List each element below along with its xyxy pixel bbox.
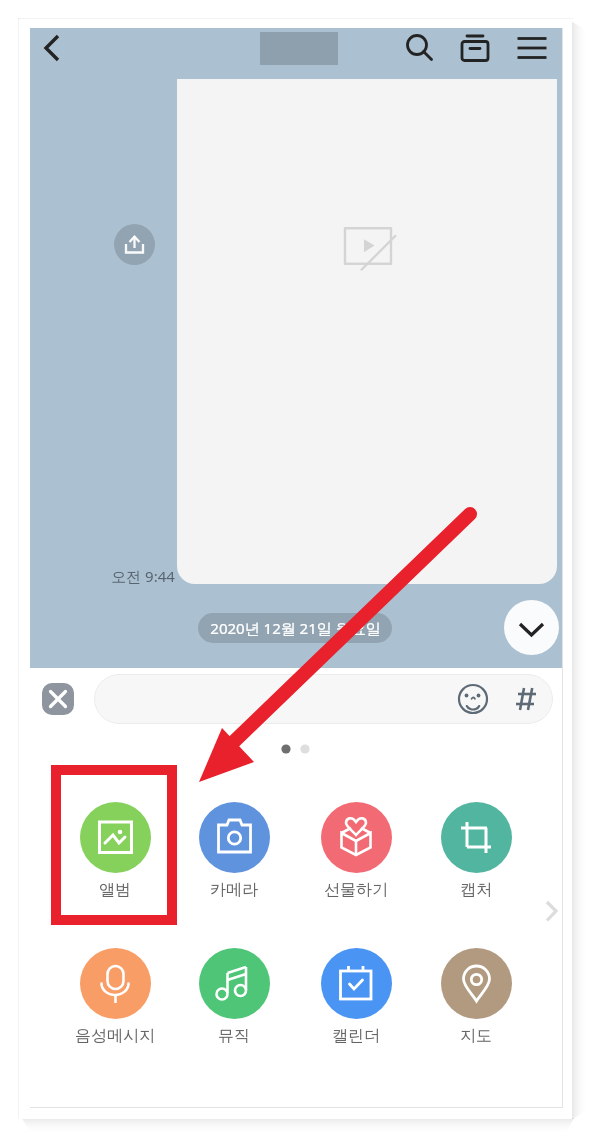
button[interactable]: 음성메시지 bbox=[60, 948, 170, 1058]
staticText: 지도 bbox=[460, 1026, 492, 1046]
button[interactable]: 캡처 bbox=[421, 802, 531, 912]
button[interactable]: Hashtag bbox=[509, 682, 543, 716]
button[interactable] bbox=[94, 674, 553, 724]
button[interactable]: 선물하기 bbox=[301, 802, 411, 912]
button[interactable]: 지도 bbox=[421, 948, 531, 1058]
staticText: 오전 9:44 bbox=[111, 566, 175, 586]
staticText: 카메라 bbox=[210, 880, 258, 900]
button[interactable]: Video message bbox=[177, 79, 557, 584]
button[interactable]: Close attachments bbox=[42, 683, 74, 715]
button[interactable]: 앨범 bbox=[60, 802, 170, 912]
staticText: 캘린더 bbox=[332, 1026, 380, 1046]
button[interactable]: Scroll to bottom bbox=[504, 600, 559, 655]
staticText: 뮤직 bbox=[218, 1026, 250, 1046]
button[interactable]: More apps bbox=[532, 896, 562, 926]
button[interactable]: Menu bbox=[510, 26, 554, 70]
button[interactable]: Search bbox=[395, 23, 439, 67]
button[interactable]: 뮤직 bbox=[179, 948, 289, 1058]
button[interactable]: Archive bbox=[453, 26, 497, 70]
button[interactable]: Emoji bbox=[456, 682, 490, 716]
staticText: 앨범 bbox=[99, 880, 131, 900]
button[interactable]: 캘린더 bbox=[301, 948, 411, 1058]
staticText: 캡처 bbox=[460, 880, 492, 900]
button[interactable]: 카메라 bbox=[179, 802, 289, 912]
button[interactable]: Back bbox=[31, 28, 75, 72]
staticText: 음성메시지 bbox=[75, 1026, 155, 1046]
staticText: 2020년 12월 21일 월요일 bbox=[210, 618, 381, 638]
button[interactable]: Share bbox=[114, 224, 155, 265]
staticText: 선물하기 bbox=[324, 880, 388, 900]
button[interactable]: 2020년 12월 21일 월요일 bbox=[198, 613, 392, 643]
